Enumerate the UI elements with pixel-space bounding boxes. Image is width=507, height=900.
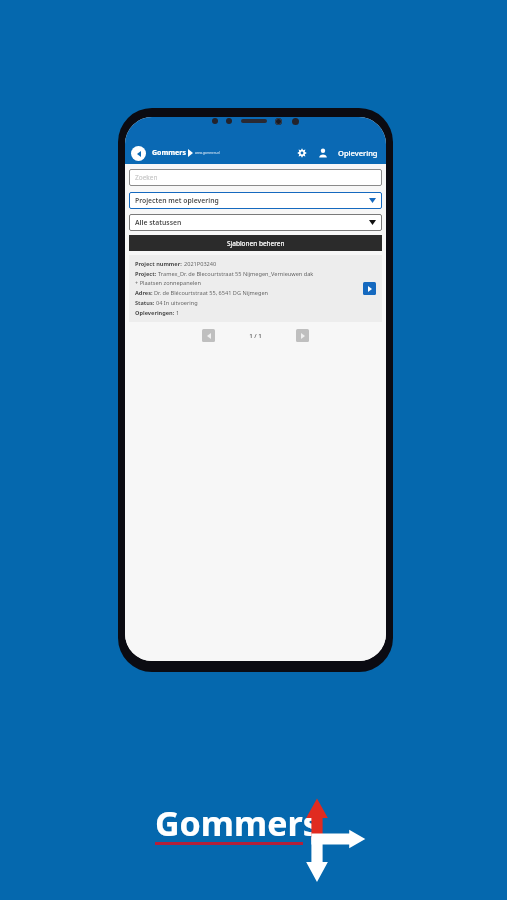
staticText: Sjablonen beheren xyxy=(227,239,285,248)
button[interactable]: Projecten met oplevering xyxy=(129,192,382,209)
button[interactable]: Zoeken xyxy=(129,169,382,186)
staticText: Status: xyxy=(135,299,156,307)
button[interactable]: Next page xyxy=(296,329,309,342)
staticText: 1 xyxy=(176,309,180,317)
button[interactable]: Settings xyxy=(294,145,310,161)
staticText: Gommers xyxy=(152,148,186,158)
staticText: Project: xyxy=(135,270,158,278)
button[interactable]: Project nummer: xyxy=(129,255,382,322)
staticText: Alle statussen xyxy=(135,218,182,227)
staticText: Opleveringen: xyxy=(135,309,176,317)
staticText: Projecten met oplevering xyxy=(135,196,219,205)
staticText: Tramex_Dr. de Blecourtstraat 55 Nijmegen… xyxy=(158,270,314,278)
staticText: 1 / 1 xyxy=(249,332,262,340)
staticText: Gommers xyxy=(155,800,320,846)
staticText: Adres: xyxy=(135,289,154,297)
button[interactable]: Sjablonen beheren xyxy=(129,235,382,251)
staticText: Oplevering xyxy=(338,148,378,158)
button[interactable]: Account xyxy=(315,145,331,161)
button[interactable]: Previous page xyxy=(202,329,215,342)
button[interactable]: Back xyxy=(131,146,146,161)
staticText: + Plaatsen zonnepanelen xyxy=(135,279,201,287)
staticText: www.gommers.nl xyxy=(195,151,220,155)
staticText: 2021P03240 xyxy=(184,260,217,268)
staticText: 04 In uitvoering xyxy=(156,299,198,307)
button[interactable]: Alle statussen xyxy=(129,214,382,231)
button[interactable]: Oplevering xyxy=(336,148,380,158)
staticText: Project nummer: xyxy=(135,260,184,268)
staticText: Zoeken xyxy=(135,173,158,182)
staticText: Dr. de Blécourtstraat 55, 6541 DG Nijmeg… xyxy=(154,289,269,297)
button[interactable]: Open project xyxy=(363,282,376,295)
